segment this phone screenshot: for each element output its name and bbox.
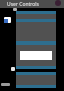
button[interactable]: Account	[55, 0, 61, 6]
button[interactable]: User Controls	[0, 0, 64, 8]
staticText: User Controls	[7, 1, 39, 8]
